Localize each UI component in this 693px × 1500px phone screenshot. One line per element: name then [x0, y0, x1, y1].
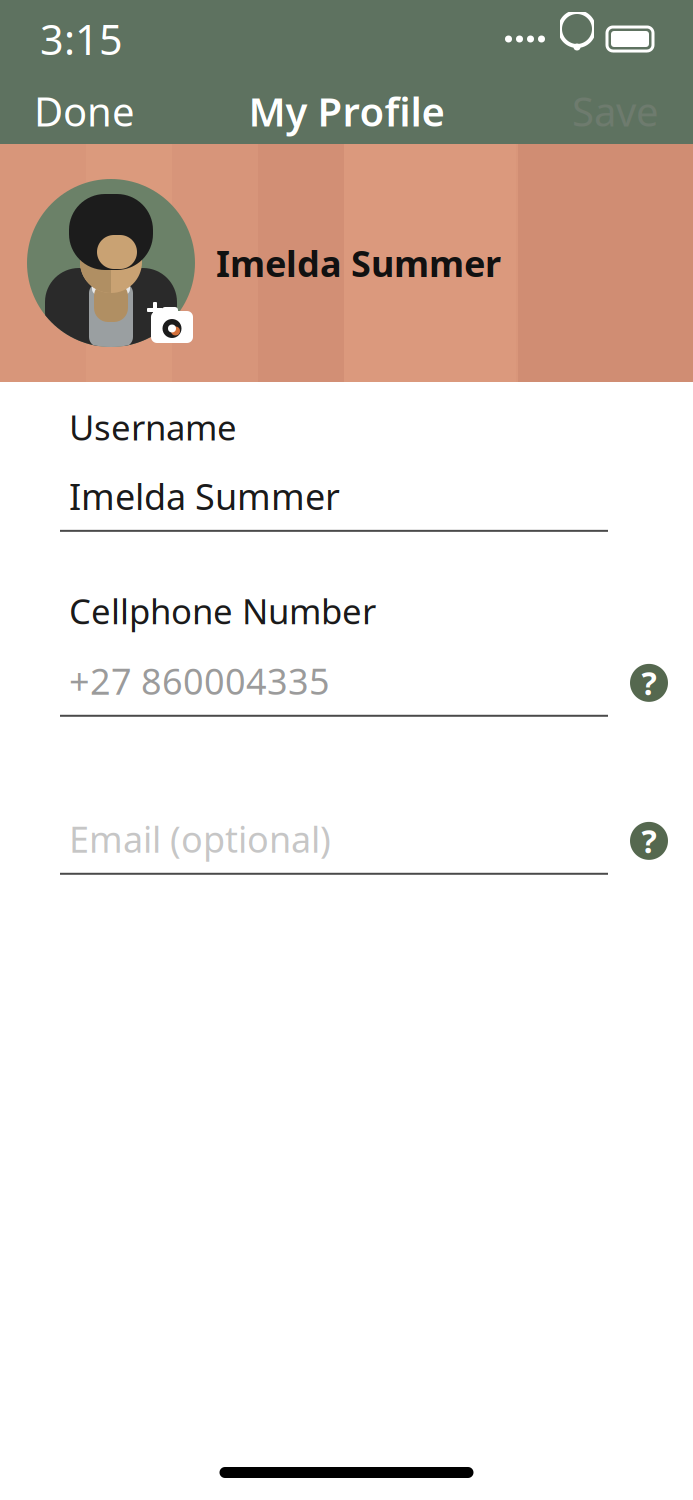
staticText: My Profile	[248, 84, 444, 137]
button[interactable]: Save	[538, 70, 693, 151]
staticText: ?	[641, 820, 656, 862]
staticText: Username	[69, 404, 237, 450]
staticText: Imelda Summer	[216, 239, 501, 287]
staticText: Save	[572, 84, 659, 137]
button[interactable]: Help	[622, 814, 676, 868]
staticText: Cellphone Number	[69, 588, 376, 634]
staticText: +27 860004335	[69, 657, 330, 705]
staticText: 3:15	[40, 12, 123, 66]
staticText: Imelda Summer	[69, 472, 340, 520]
button[interactable]: Change profile photo	[22, 174, 200, 352]
staticText: ?	[641, 662, 656, 704]
button[interactable]: Help	[622, 656, 676, 710]
button[interactable]: Done	[0, 70, 169, 151]
staticText: Email (optional)	[69, 815, 331, 863]
staticText: Done	[34, 84, 135, 137]
